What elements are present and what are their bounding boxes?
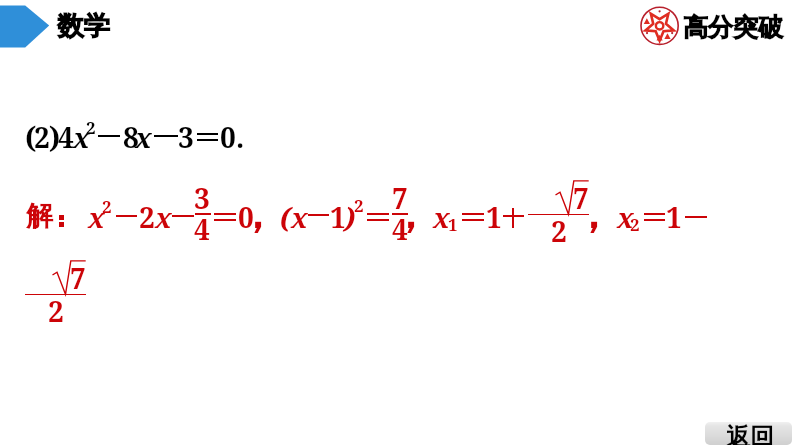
staticText: 4 [194,210,210,248]
staticText: 4 [392,210,408,248]
staticText: 1 [448,213,458,236]
staticText: 4 [58,118,74,156]
staticText: 1 [330,198,346,236]
staticText: 返回 [726,422,774,445]
staticText: 7 [392,179,408,217]
staticText: 解 [26,199,53,233]
staticText: x [88,198,105,236]
staticText: 2 [48,292,64,330]
staticText: ， [237,189,277,239]
staticText: ( [25,118,37,156]
staticText: 7 [573,179,589,217]
staticText: 2 [354,194,364,217]
button[interactable]: 返回 [705,422,792,445]
staticText: 2 [630,213,640,236]
staticText: 2 [34,118,50,156]
staticText: x [73,118,90,156]
staticText: 1 [486,198,502,236]
staticText: 2 [102,195,112,218]
staticText: . [236,118,245,156]
staticText: ( [280,198,292,236]
staticText: 8 [123,118,139,156]
staticText: ) [49,118,61,156]
staticText: 1 [666,198,682,236]
staticText: 0 [220,118,236,156]
staticText: 2 [551,212,567,250]
staticText: x [617,198,634,236]
staticText: 3 [194,179,210,217]
other: 高分突破 logo [640,5,680,47]
staticText: ， [390,189,430,239]
staticText: 3 [178,118,194,156]
staticText: 2 [139,198,155,236]
staticText: x [291,198,308,236]
staticText: 数学 [57,9,110,42]
staticText: ) [344,198,356,236]
staticText: x [433,198,450,236]
staticText: 高分突破 [683,12,783,43]
staticText: x [155,198,172,236]
staticText: x [135,118,152,156]
staticText: 7 [70,259,86,297]
staticText: 2 [86,116,96,139]
staticText: 0 [238,198,254,236]
staticText: ， [573,189,613,239]
